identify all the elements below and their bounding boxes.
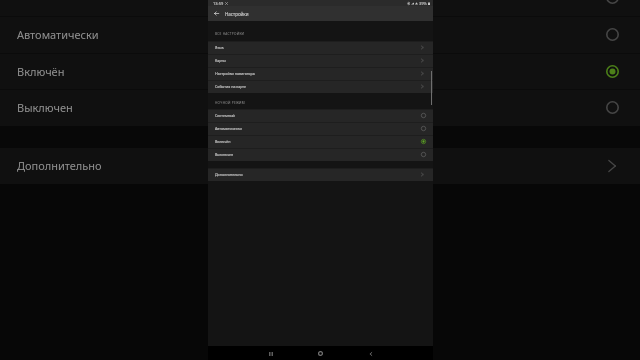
button[interactable]: Включён	[208, 135, 433, 148]
button[interactable]: Включён	[0, 53, 640, 90]
staticText: Дополнительно	[17, 158, 102, 173]
staticText: Включён	[215, 139, 231, 144]
staticText: ВСЕ НАСТРОЙКИ	[215, 32, 245, 36]
staticText: Автоматически	[215, 126, 242, 131]
staticText: Выключен	[215, 152, 234, 157]
staticText: НОЧНОЙ РЕЖИМ	[215, 101, 245, 105]
button[interactable]: Настройки навигатора	[208, 67, 433, 80]
button[interactable]: Back	[365, 348, 376, 359]
button[interactable]: Автоматически	[0, 16, 640, 53]
button[interactable]: Системный	[208, 109, 433, 122]
button[interactable]: Автоматически	[208, 122, 433, 135]
staticText: Настройки навигатора	[215, 71, 255, 76]
staticText: Автоматически	[17, 27, 99, 42]
button[interactable]: События на карте	[208, 80, 433, 93]
staticText: Выключен	[17, 100, 73, 115]
staticText: Дополнительно	[215, 172, 243, 177]
staticText: Системный	[215, 113, 235, 118]
staticText: Настройки	[225, 11, 249, 17]
button[interactable]: Системный	[0, 0, 640, 16]
button[interactable]: Recent apps	[265, 348, 276, 359]
staticText: 39%	[419, 1, 427, 6]
button[interactable]: Дополнительно	[0, 148, 640, 184]
staticText: Язык	[215, 45, 224, 50]
button[interactable]: Дополнительно	[208, 168, 433, 181]
staticText: События на карте	[215, 84, 246, 89]
button[interactable]: Выключен	[0, 89, 640, 126]
staticText: Включён	[17, 64, 65, 79]
staticText: 13:59	[213, 1, 224, 6]
button[interactable]: Карты	[208, 54, 433, 67]
button[interactable]: Язык	[208, 41, 433, 54]
button[interactable]: Выключен	[208, 148, 433, 161]
button[interactable]: Back	[212, 9, 221, 18]
staticText: Карты	[215, 58, 226, 63]
button[interactable]: Home	[315, 348, 326, 359]
